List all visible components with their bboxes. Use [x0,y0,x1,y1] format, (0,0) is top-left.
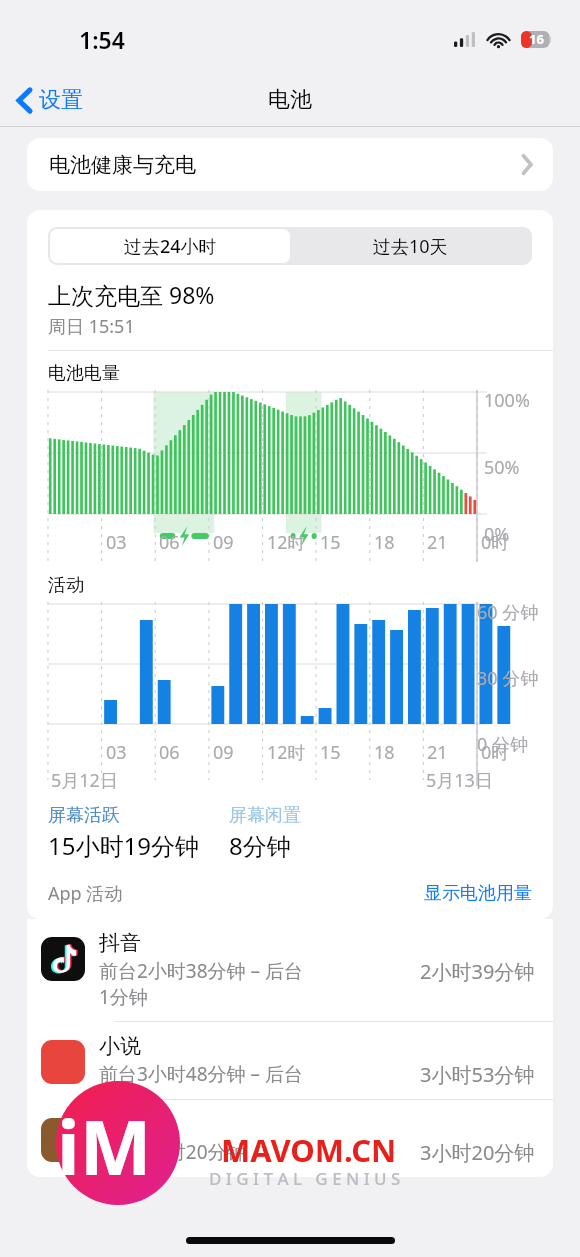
staticText: 屏幕闲置 [229,804,301,827]
button[interactable]: 显示电池用量 [424,882,532,905]
staticText: 显示电池用量 [424,882,532,905]
staticText: 8分钟 [229,829,291,862]
button[interactable]: 小说 [27,1022,553,1099]
staticText: 06 [159,530,180,555]
button[interactable]: 冲突 [27,1100,553,1177]
button[interactable]: 过去10天 [290,229,530,263]
staticText: 冲突 [99,1111,141,1137]
button[interactable]: 设置 [12,79,89,121]
staticText: 5月13日 [426,768,493,793]
staticText: 电池电量 [48,362,120,385]
staticText: 100% [484,388,530,413]
staticText: 18 [374,530,395,555]
staticText: 15小时19分钟 [48,829,199,862]
staticText: 活动 [48,574,84,597]
staticText: MAVOM.CN [221,1129,397,1171]
staticText: 前台2小时38分钟 – 后台 [99,958,303,984]
staticText: 0 分钟 [477,732,528,757]
staticText: 16 [529,30,544,48]
other: 电池健康与充电 [522,155,532,174]
staticText: 1分钟 [99,984,148,1010]
staticText: 0时 [481,530,510,555]
staticText: 12时 [267,530,306,555]
staticText: 03 [106,740,127,765]
staticText: 抖音 [99,930,141,956]
staticText: 上次充电至 98% [48,279,215,310]
button[interactable]: 过去24小时 [50,229,290,263]
staticText: 1:54 [79,24,125,55]
staticText: 15 [320,740,341,765]
staticText: 03 [106,530,127,555]
button[interactable]: 电池健康与充电 [27,138,553,191]
staticText: 18 [374,740,395,765]
staticText: 5月12日 [51,768,118,793]
staticText: 21 [427,740,448,765]
staticText: 周日 15:51 [48,314,135,339]
staticText: 06 [159,740,180,765]
staticText: 12时 [267,740,306,765]
staticText: iM [57,1094,152,1198]
staticText: D I G I T A L G E N I U S [209,1167,401,1190]
staticText: 15 [320,530,341,555]
staticText: 小说 [99,1033,141,1059]
staticText: 09 [213,740,234,765]
staticText: App 活动 [48,881,123,906]
staticText: 前台3小时48分钟 – 后台 [99,1061,303,1087]
staticText: 过去10天 [373,234,448,259]
staticText: 2小时39分钟 [420,958,535,985]
button[interactable]: 抖音 [27,919,553,1021]
staticText: 30 分钟 [477,666,539,691]
staticText: 电池 [268,86,312,114]
staticText: 设置 [39,86,83,114]
staticText: 3小时53分钟 [420,1061,535,1088]
staticText: 50% [484,455,520,480]
staticText: 09 [213,530,234,555]
staticText: 过去24小时 [124,234,217,259]
staticText: 电池健康与充电 [49,152,196,178]
staticText: 屏幕活跃 [48,804,120,827]
staticText: 0时 [481,740,510,765]
staticText: 前台3小时20分钟 [99,1139,246,1165]
staticText: 21 [427,530,448,555]
staticText: 3小时20分钟 [420,1139,535,1166]
staticText: 0% [484,522,510,547]
staticText: 60 分钟 [477,600,539,625]
